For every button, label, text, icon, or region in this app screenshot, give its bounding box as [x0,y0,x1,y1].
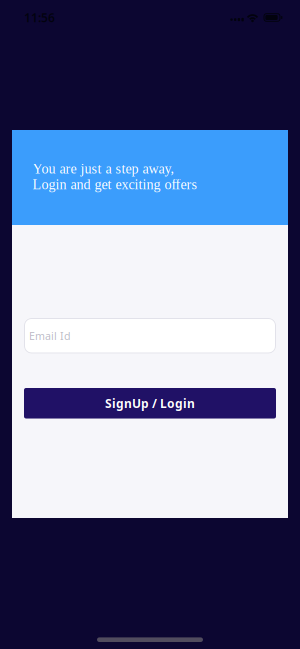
button[interactable]: SignUp / Login [24,388,276,418]
button[interactable]: Email Id [24,318,276,353]
staticText: Login and get exciting offers [32,177,197,192]
staticText: SignUp / Login [105,395,195,411]
staticText: 11:56 [24,9,55,25]
staticText: Email Id [29,329,71,343]
staticText: You are just a step away, [32,161,174,177]
